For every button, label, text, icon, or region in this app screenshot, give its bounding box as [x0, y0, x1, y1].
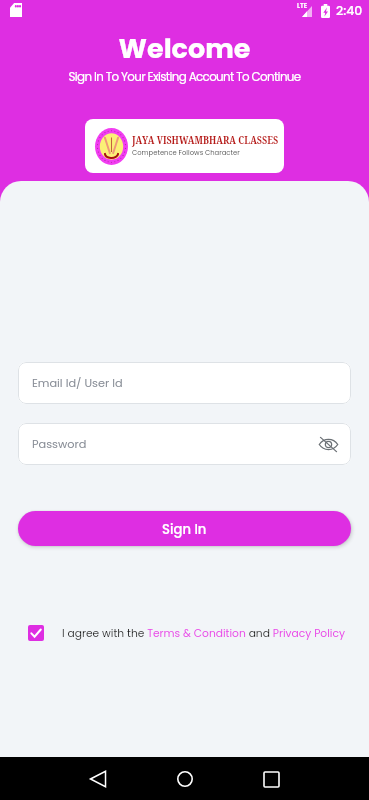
staticText: Sign In: [162, 520, 207, 538]
button[interactable]: Sign In: [18, 511, 351, 546]
button[interactable]: Show password: [316, 432, 340, 456]
staticText: Password: [32, 436, 87, 452]
button[interactable]: I agree checkbox: [28, 625, 44, 641]
staticText: JAYA VISHWAMBHARA CLASSES: [132, 132, 279, 147]
button[interactable]: Home: [167, 761, 203, 797]
staticText: 2:40: [336, 2, 363, 19]
button[interactable]: Back: [80, 761, 116, 797]
staticText: Sign In To Your Existing Account To Cont…: [0, 69, 369, 86]
staticText: I agree with the Terms & Condition and P…: [62, 626, 345, 641]
staticText: LTE: [297, 1, 308, 10]
button[interactable]: Password: [18, 423, 351, 465]
staticText: Competence Follows Character: [132, 148, 240, 158]
staticText: Welcome: [0, 30, 369, 68]
button[interactable]: Email Id/ User Id: [18, 362, 351, 404]
staticText: Email Id/ User Id: [32, 375, 123, 391]
button[interactable]: Recent apps: [253, 761, 289, 797]
